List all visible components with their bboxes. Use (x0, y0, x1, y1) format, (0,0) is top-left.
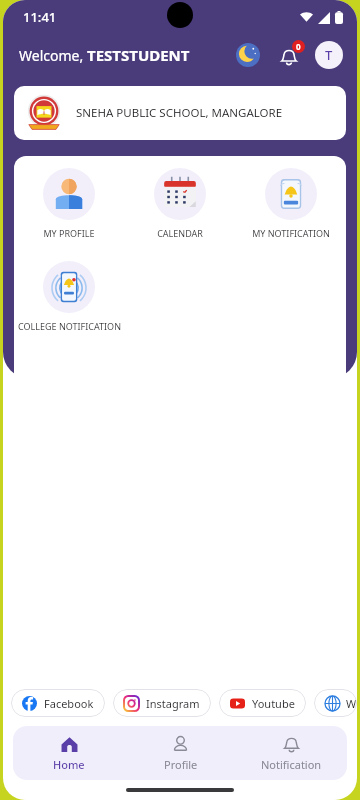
button[interactable]: Website (314, 689, 357, 717)
button[interactable]: CALENDAR (124, 168, 235, 239)
staticText: COLLEGE NOTIFICATION (18, 320, 121, 332)
button[interactable]: COLLEGE NOTIFICATION (14, 261, 124, 332)
button[interactable]: Dark mode (235, 42, 261, 68)
staticText: MY PROFILE (43, 227, 95, 239)
button[interactable]: Notifications (275, 41, 303, 69)
staticText: Facebook (44, 696, 94, 711)
staticText: CALENDAR (157, 227, 203, 239)
staticText: 11:41 (23, 8, 57, 26)
button[interactable]: MY PROFILE (14, 168, 124, 239)
staticText: Youtube (252, 696, 295, 711)
button[interactable]: Instagram (113, 689, 211, 717)
button[interactable]: Account (315, 41, 343, 69)
staticText: Instagram (146, 696, 200, 711)
button[interactable]: SNEHA PUBLIC SCHOOL, MANGALORE (14, 86, 346, 140)
staticText: Welcome, (19, 46, 87, 65)
staticText: T (325, 46, 333, 64)
button[interactable]: Youtube (219, 689, 306, 717)
staticText: TESTSTUDENT (87, 45, 190, 65)
button[interactable]: MY NOTIFICATION (235, 168, 346, 239)
button[interactable]: Profile (125, 726, 236, 780)
staticText: Notification (261, 757, 322, 772)
staticText: 0 (296, 41, 301, 52)
staticText: MY NOTIFICATION (252, 227, 330, 239)
staticText: Home (53, 757, 85, 772)
staticText: Profile (164, 757, 198, 772)
button[interactable]: Notification (236, 726, 347, 780)
button[interactable]: Facebook (11, 689, 105, 717)
staticText: SNEHA PUBLIC SCHOOL, MANGALORE (76, 105, 283, 121)
button[interactable]: Home (13, 726, 125, 780)
